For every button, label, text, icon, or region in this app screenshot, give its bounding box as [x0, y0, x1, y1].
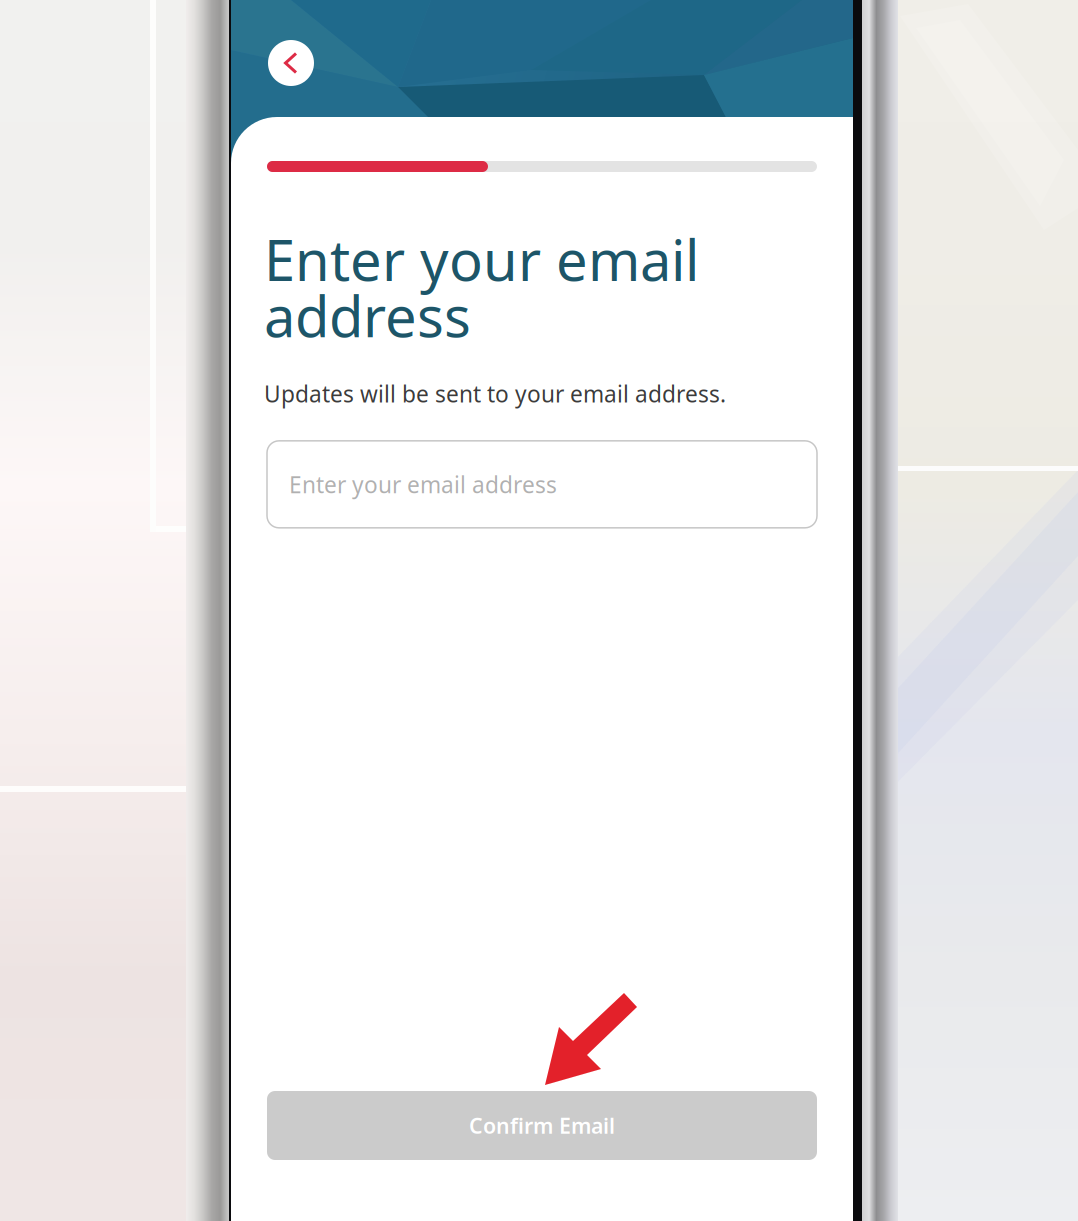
staticText: Enter your email address: [289, 469, 557, 499]
button[interactable]: Back: [268, 40, 314, 86]
staticText: Updates will be sent to your email addre…: [264, 379, 726, 409]
button[interactable]: Enter your email address: [267, 441, 817, 528]
staticText: address: [264, 278, 471, 353]
staticText: Confirm Email: [469, 1111, 615, 1140]
staticText: Enter your email: [264, 222, 699, 296]
button[interactable]: Confirm Email: [267, 1091, 817, 1160]
